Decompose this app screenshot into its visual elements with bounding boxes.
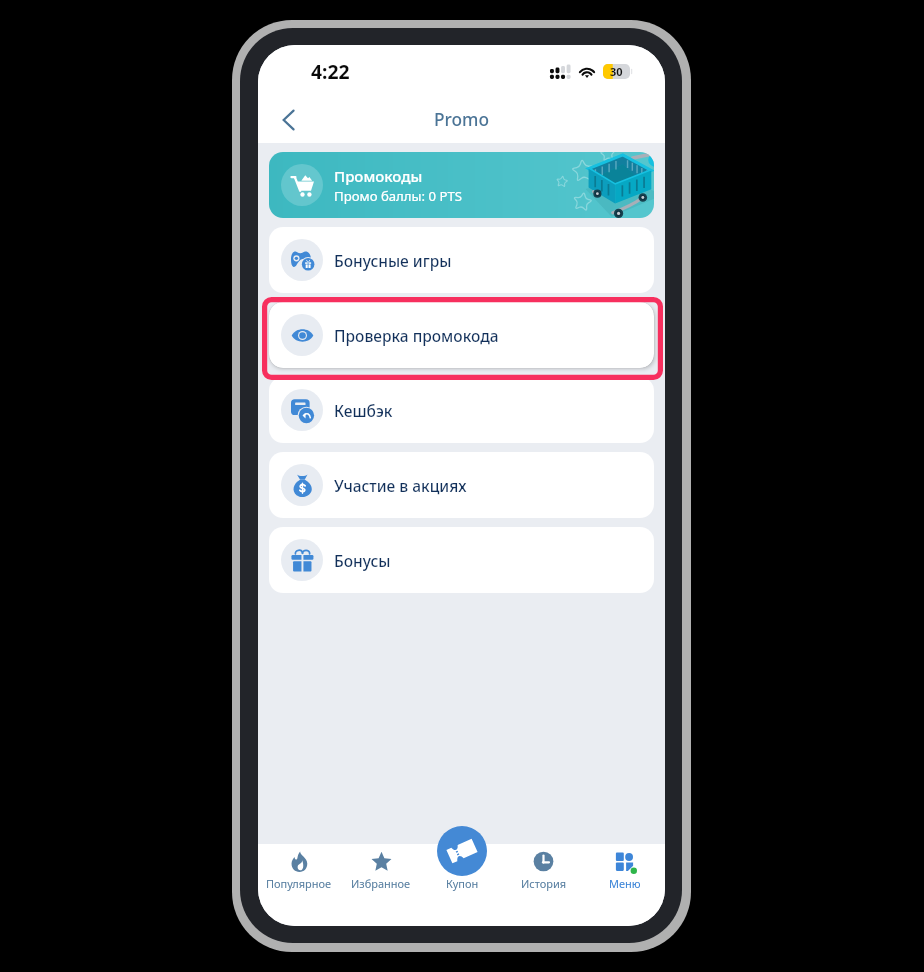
button[interactable]: Бонусные игры	[269, 227, 654, 293]
button[interactable]: Избранное	[340, 844, 422, 891]
staticText: Участие в акциях	[334, 475, 467, 496]
staticText: Promo	[258, 108, 665, 132]
staticText: Проверка промокода	[334, 325, 499, 346]
button[interactable]: Участие в акциях	[269, 452, 654, 518]
staticText: Кешбэк	[334, 400, 393, 421]
staticText: Меню	[609, 876, 641, 891]
staticText: Бонусные игры	[334, 250, 452, 271]
button[interactable]: Проверка промокода	[269, 302, 654, 368]
staticText: 4:22	[311, 58, 350, 84]
button[interactable]: Кешбэк	[269, 377, 654, 443]
staticText: Популярное	[266, 876, 332, 891]
button[interactable]: Промокоды	[269, 152, 654, 218]
button[interactable]: Купон	[437, 826, 487, 876]
staticText: Купон	[446, 876, 479, 891]
staticText: Избранное	[351, 876, 411, 891]
button[interactable]: Back	[267, 99, 309, 141]
staticText: Промо баллы: 0 PTS	[334, 187, 463, 205]
staticText: Промокоды	[334, 166, 423, 186]
button[interactable]: Бонусы	[269, 527, 654, 593]
staticText: Бонусы	[334, 550, 391, 571]
button[interactable]: История	[503, 844, 584, 891]
button[interactable]: Популярное	[258, 844, 340, 891]
button[interactable]: Меню	[584, 844, 665, 891]
staticText: История	[521, 876, 567, 891]
staticText: 30	[610, 64, 623, 79]
button[interactable]: Купон	[422, 844, 503, 891]
